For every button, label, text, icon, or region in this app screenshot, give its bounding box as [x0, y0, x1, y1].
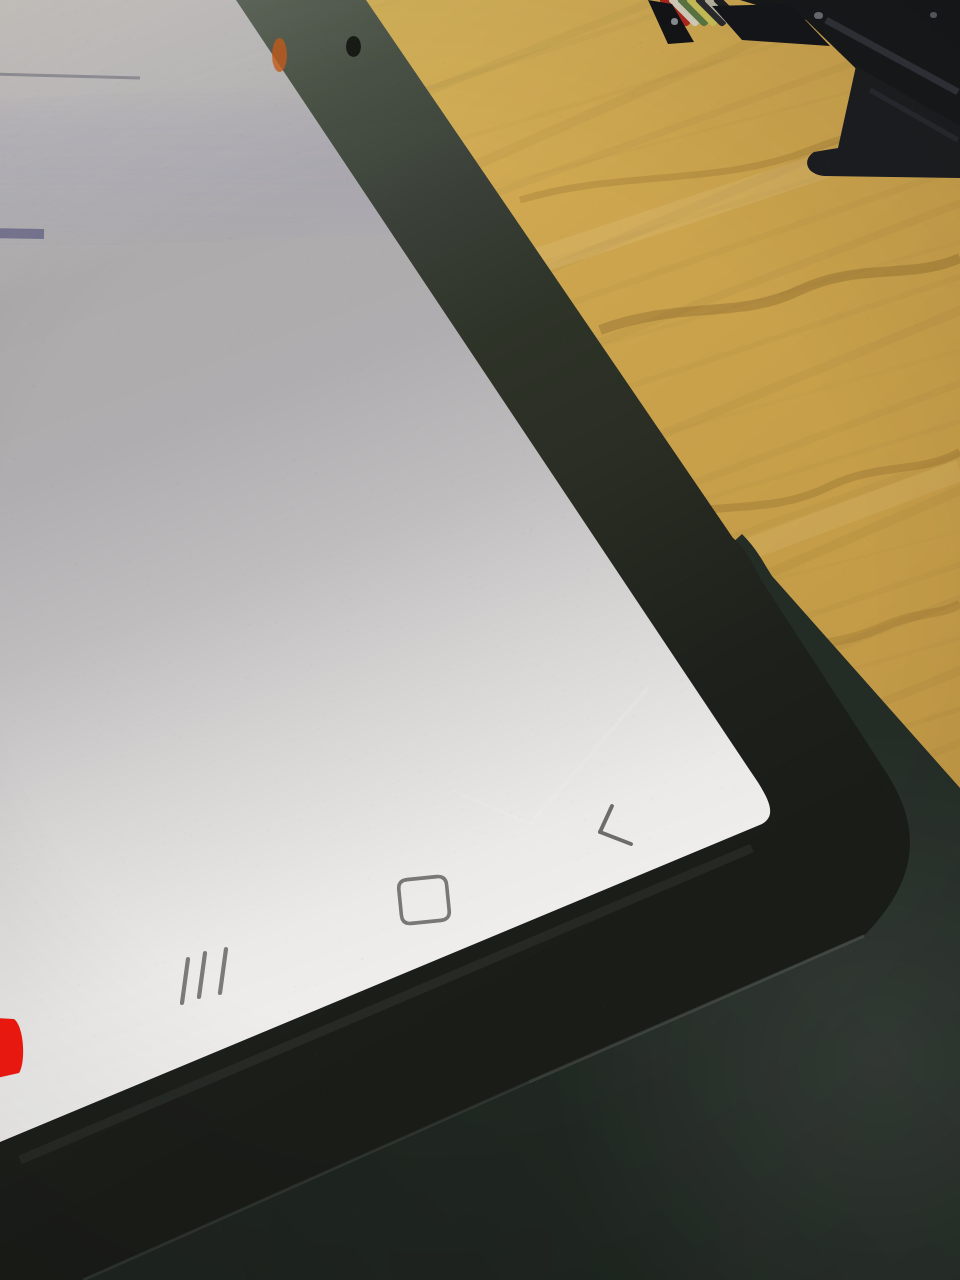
button[interactable]: Photo of a tablet on a wooden desk — [0, 0, 960, 1280]
